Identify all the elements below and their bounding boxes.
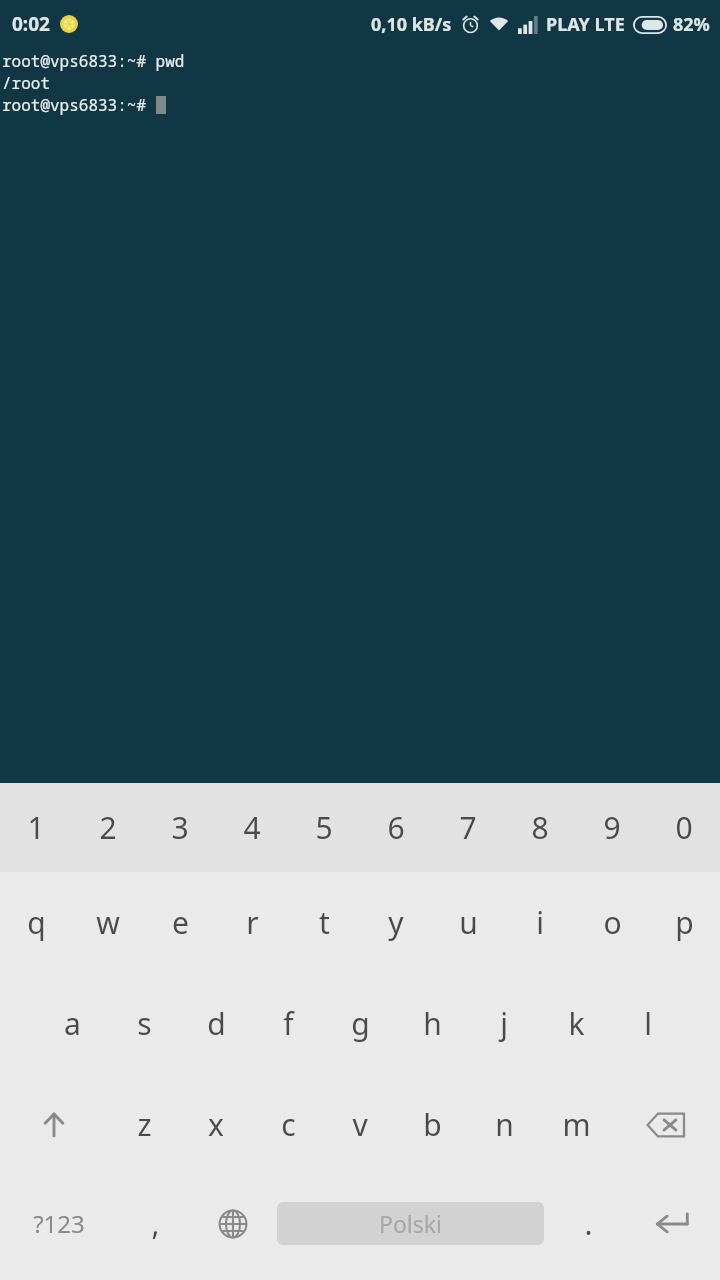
button[interactable]: r [216,872,288,973]
button[interactable]: z [108,1074,180,1175]
staticText: n [495,1104,514,1145]
staticText: b [423,1104,442,1145]
button[interactable]: q [0,872,72,973]
staticText: g [351,1003,370,1044]
staticText: 9 [603,807,621,848]
staticText: 0,10 kB/s [371,12,452,37]
staticText: o [603,902,622,943]
staticText: d [207,1003,226,1044]
staticText: root@vps6833:~# pwd [2,50,185,72]
staticText: . [584,1203,593,1244]
button[interactable]: u [432,872,504,973]
button[interactable]: 3 [144,783,216,872]
button[interactable]: g [324,973,396,1074]
staticText: h [423,1003,442,1044]
staticText: a [64,1003,81,1044]
staticText: 3 [171,807,189,848]
staticText: k [568,1003,585,1044]
button[interactable]: 1 [0,783,72,872]
staticText: 7 [459,807,477,848]
staticText: ?123 [33,1207,85,1240]
button[interactable]: l [612,973,684,1074]
button[interactable]: a [36,973,108,1074]
staticText: t [319,902,330,943]
button[interactable]: w [72,872,144,973]
staticText: 0:02 [12,11,50,37]
staticText: w [96,902,120,943]
button[interactable]: f [252,973,324,1074]
button[interactable]: ?123 [0,1175,117,1272]
staticText: x [208,1104,224,1145]
button[interactable]: 5 [288,783,360,872]
button[interactable]: c [252,1074,324,1175]
button[interactable]: p [648,872,720,973]
staticText: y [388,902,404,943]
staticText: /root [2,72,51,94]
button[interactable]: x [180,1074,252,1175]
button[interactable]: o [576,872,648,973]
staticText: r [246,902,259,943]
staticText: 1 [27,807,45,848]
button[interactable]: 6 [360,783,432,872]
staticText: q [27,902,46,943]
staticText: v [352,1104,368,1145]
button[interactable]: j [468,973,540,1074]
button[interactable]: 2 [72,783,144,872]
button[interactable]: y [360,872,432,973]
staticText: Polski [379,1208,442,1239]
button[interactable]: 0 [648,783,720,872]
staticText: e [172,902,189,943]
staticText: 8 [531,807,549,848]
button[interactable]: Shift [0,1074,108,1175]
button[interactable]: h [396,973,468,1074]
staticText: z [137,1104,152,1145]
button[interactable]: d [180,973,252,1074]
button[interactable]: Enter [627,1175,720,1272]
button[interactable]: Polski [277,1202,544,1245]
button[interactable]: 4 [216,783,288,872]
staticText: PLAY LTE [546,12,625,37]
button[interactable]: i [504,872,576,973]
staticText: 6 [387,807,405,848]
button[interactable]: Backspace [612,1074,720,1175]
button[interactable]: k [540,973,612,1074]
staticText: s [137,1003,152,1044]
staticText: m [562,1104,591,1145]
staticText: 2 [99,807,117,848]
staticText: 5 [315,807,333,848]
staticText: i [536,902,544,943]
staticText: l [644,1003,652,1044]
button[interactable]: 9 [576,783,648,872]
button[interactable]: Change language [194,1175,271,1272]
staticText: 82% [673,12,710,37]
staticText: p [675,902,694,943]
staticText: root@vps6833:~# [2,94,156,116]
button[interactable]: s [108,973,180,1074]
button[interactable]: , [117,1175,194,1272]
button[interactable]: t [288,872,360,973]
staticText: f [283,1003,294,1044]
button[interactable]: 8 [504,783,576,872]
button[interactable]: n [468,1074,540,1175]
staticText: 0 [675,807,693,848]
staticText: 4 [243,807,261,848]
button[interactable]: e [144,872,216,973]
staticText: , [151,1203,160,1244]
button[interactable]: v [324,1074,396,1175]
staticText: u [459,902,478,943]
staticText: c [281,1104,296,1145]
staticText: j [500,1003,508,1044]
button[interactable]: 7 [432,783,504,872]
button[interactable]: b [396,1074,468,1175]
button[interactable]: . [550,1175,627,1272]
button[interactable]: m [540,1074,612,1175]
